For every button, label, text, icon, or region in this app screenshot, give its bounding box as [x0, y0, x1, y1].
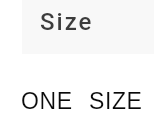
staticText: ONE [21, 88, 73, 114]
button[interactable]: ONE [21, 88, 143, 114]
staticText: SIZE [89, 88, 143, 114]
button[interactable] [22, 0, 154, 54]
staticText: Size [40, 8, 94, 36]
